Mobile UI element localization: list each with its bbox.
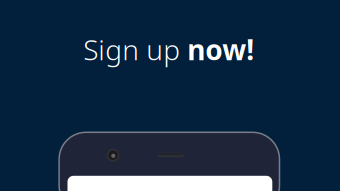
staticText: Sign up now! [83,31,254,68]
button[interactable]: Sign up now! [83,31,254,68]
